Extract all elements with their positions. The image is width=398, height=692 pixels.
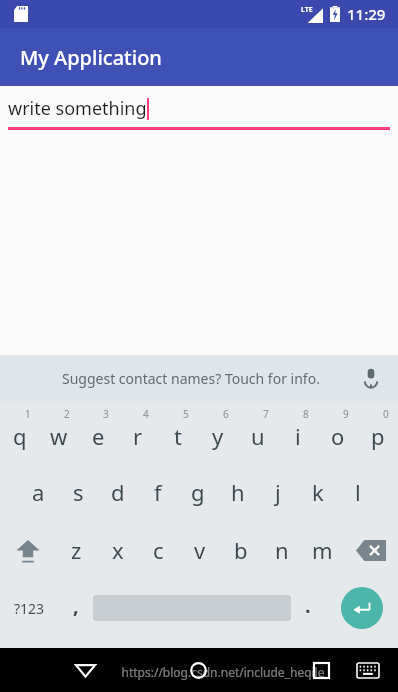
staticText: y	[212, 421, 224, 451]
button[interactable]: Switch keyboard	[354, 656, 382, 684]
staticText: ,	[73, 592, 79, 619]
button[interactable]: 8	[278, 401, 318, 463]
staticText: d	[111, 477, 125, 507]
button[interactable]: x	[97, 521, 138, 579]
staticText: w	[50, 421, 68, 451]
staticText: x	[112, 535, 124, 565]
button[interactable]: s	[58, 463, 98, 521]
staticText: h	[231, 477, 245, 507]
button[interactable]: .	[291, 579, 325, 637]
button[interactable]: b	[220, 521, 261, 579]
button[interactable]: k	[298, 463, 338, 521]
staticText: 4	[143, 407, 149, 421]
staticText: https://blog.csdn.net/include_heqile	[24, 664, 398, 680]
staticText: ?123	[14, 599, 45, 618]
staticText: t	[174, 421, 182, 451]
staticText: 6	[223, 407, 229, 421]
staticText: write something	[8, 96, 147, 121]
button[interactable]: 1	[0, 401, 39, 463]
staticText: 9	[343, 407, 349, 421]
staticText: b	[234, 535, 248, 565]
staticText: q	[13, 421, 27, 451]
button[interactable]: j	[258, 463, 298, 521]
staticText: o	[331, 421, 345, 451]
button[interactable]: My Application	[0, 28, 398, 86]
staticText: 0	[383, 407, 389, 421]
button[interactable]: 5	[158, 401, 198, 463]
button[interactable]: Enter	[325, 579, 398, 637]
staticText: z	[71, 535, 82, 565]
button[interactable]: 4	[118, 401, 158, 463]
button[interactable]: g	[178, 463, 218, 521]
button[interactable]: c	[138, 521, 179, 579]
staticText: 8	[303, 407, 309, 421]
button[interactable]: v	[179, 521, 220, 579]
staticText: m	[312, 535, 333, 565]
staticText: 11:29	[347, 4, 386, 24]
staticText: p	[371, 421, 385, 451]
button[interactable]: Space	[93, 579, 291, 637]
staticText: k	[312, 477, 324, 507]
staticText: Suggest contact names? Touch for info.	[62, 369, 320, 388]
staticText: i	[295, 421, 301, 451]
button[interactable]: 6	[198, 401, 238, 463]
button[interactable]: Voice input	[358, 365, 384, 391]
button[interactable]: 7	[238, 401, 278, 463]
button[interactable]: ,	[59, 579, 93, 637]
staticText: u	[251, 421, 265, 451]
button[interactable]: write something	[8, 89, 390, 127]
button[interactable]: 3	[78, 401, 118, 463]
staticText: v	[194, 535, 206, 565]
button[interactable]: 0	[358, 401, 398, 463]
staticText: f	[154, 477, 162, 507]
button[interactable]: Home	[183, 655, 213, 685]
staticText: l	[355, 477, 361, 507]
staticText: e	[92, 421, 105, 451]
staticText: 3	[103, 407, 109, 421]
staticText: c	[153, 535, 164, 565]
button[interactable]: m	[302, 521, 343, 579]
button[interactable]: z	[56, 521, 97, 579]
staticText: 7	[263, 407, 269, 421]
button[interactable]: Backspace	[343, 521, 398, 579]
staticText: LTE	[301, 5, 313, 15]
button[interactable]: Suggest contact names? Touch for info.	[0, 355, 398, 401]
button[interactable]: ?123	[0, 579, 59, 637]
staticText: s	[73, 477, 84, 507]
button[interactable]: Shift	[0, 521, 56, 579]
staticText: My Application	[20, 44, 162, 71]
staticText: r	[133, 421, 143, 451]
button[interactable]: a	[19, 463, 58, 521]
button[interactable]: f	[138, 463, 178, 521]
staticText: .	[305, 592, 311, 619]
button[interactable]: Back	[70, 655, 100, 685]
button[interactable]: d	[98, 463, 138, 521]
button[interactable]: Recent apps	[306, 655, 336, 685]
button[interactable]: l	[338, 463, 378, 521]
staticText: 1	[25, 407, 31, 421]
staticText: j	[275, 477, 281, 507]
button[interactable]: 9	[318, 401, 358, 463]
staticText: 5	[183, 407, 189, 421]
staticText: g	[191, 477, 205, 507]
button[interactable]: h	[218, 463, 258, 521]
staticText: a	[32, 477, 45, 507]
button[interactable]: n	[261, 521, 302, 579]
staticText: 2	[64, 407, 70, 421]
button[interactable]: 2	[39, 401, 78, 463]
staticText: n	[275, 535, 289, 565]
